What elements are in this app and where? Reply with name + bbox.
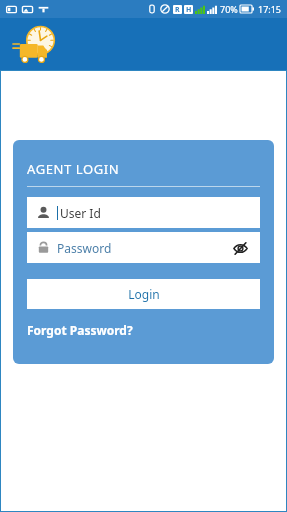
button[interactable]: Login — [27, 279, 260, 309]
staticText: 17:15 — [258, 3, 282, 15]
staticText: 70% — [220, 3, 238, 15]
button[interactable]: Forgot Password? — [27, 322, 133, 338]
staticText: Forgot Password? — [27, 322, 133, 338]
staticText: User Id — [60, 205, 101, 221]
button[interactable]: Show password — [230, 238, 250, 258]
staticText: R — [175, 5, 180, 14]
staticText: AGENT LOGIN — [27, 160, 120, 178]
button[interactable]: Password — [27, 232, 260, 263]
staticText: Password — [57, 240, 112, 256]
button[interactable]: User Id — [27, 197, 260, 228]
other: App logo — [12, 21, 58, 67]
staticText: H — [186, 5, 192, 14]
staticText: Login — [128, 286, 160, 302]
